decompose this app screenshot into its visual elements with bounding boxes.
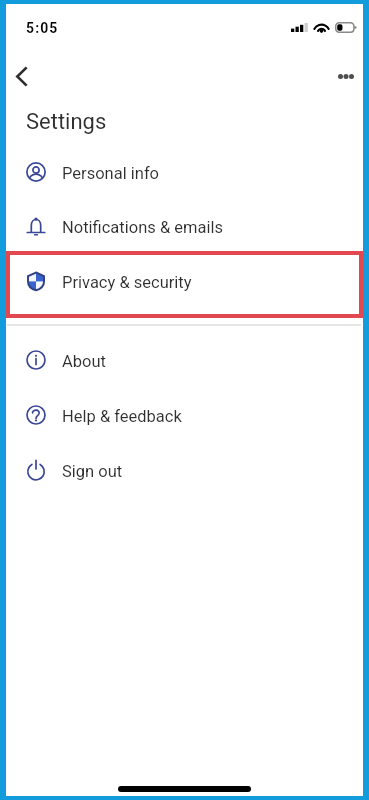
staticText: 5:05 (26, 20, 59, 36)
staticText: Personal info (62, 164, 160, 183)
staticText: About (62, 352, 106, 371)
button[interactable]: About (7, 334, 362, 389)
staticText: Privacy & security (62, 273, 192, 292)
button[interactable]: Sign out (7, 444, 362, 499)
staticText: Sign out (62, 462, 123, 481)
button[interactable]: Back (3, 58, 39, 94)
staticText: Settings (26, 109, 107, 135)
button[interactable]: Privacy & security (7, 255, 362, 310)
button[interactable]: Notifications & emails (7, 200, 362, 255)
staticText: Help & feedback (62, 407, 182, 426)
button[interactable]: More options (330, 61, 361, 92)
staticText: Notifications & emails (62, 218, 223, 237)
button[interactable]: Personal info (7, 146, 362, 201)
button[interactable]: Help & feedback (7, 389, 362, 444)
